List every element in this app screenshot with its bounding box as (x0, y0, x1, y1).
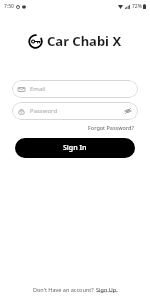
staticText: 7:50 (4, 3, 14, 10)
staticText: Email (30, 85, 132, 93)
staticText: Forgot Password? (88, 124, 134, 131)
button[interactable]: Password (12, 102, 138, 120)
staticText: Don't Have an account? (33, 286, 96, 293)
button[interactable]: Forgot Password? (86, 123, 136, 132)
staticText: Sign In (63, 143, 87, 153)
staticText: Sign Up. (96, 286, 118, 293)
button[interactable]: Email (12, 80, 138, 98)
button[interactable]: Sign Up. (96, 286, 118, 293)
staticText: Car Chabi X (47, 32, 122, 50)
button[interactable]: Toggle password visibility (124, 107, 132, 115)
staticText: Password (30, 107, 124, 115)
staticText: 72% (132, 3, 142, 10)
button[interactable]: Sign In (15, 138, 135, 158)
